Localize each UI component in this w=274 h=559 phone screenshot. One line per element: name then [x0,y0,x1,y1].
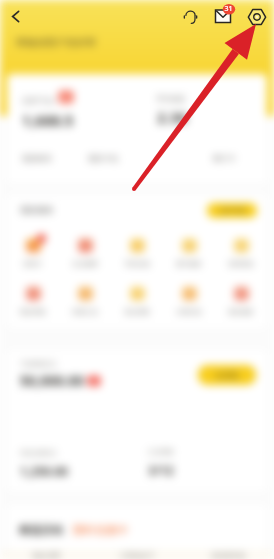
button[interactable]: 银行卡 [213,154,236,163]
staticText: 转账汇款 [72,308,98,316]
button[interactable]: Back [4,5,27,28]
staticText: 精选活动 [19,523,63,537]
staticText: 选优惠补贴 [211,551,246,559]
button[interactable]: 手机充值 [111,235,163,268]
staticText: 更多服务 [228,308,254,316]
button[interactable]: 分期还款中 [92,551,183,559]
staticText: 基金理财 [124,308,150,316]
button[interactable]: 转账汇款 [59,283,111,316]
staticText: 新 [63,93,69,101]
button[interactable]: 生活缴费 [59,235,111,268]
staticText: 我的消费 [32,551,60,559]
staticText: 信用卡 [23,260,43,268]
button[interactable]: 信用卡 [7,235,59,268]
staticText: 我的服务 [20,205,54,216]
staticText: 立即申请 [218,206,246,215]
staticText: 息 [91,377,97,385]
button[interactable]: 基金理财 [111,283,163,316]
staticText: 手机充值 [124,260,150,268]
staticText: 分期还款中 [120,551,155,559]
button[interactable]: 爱车服务 [163,235,215,268]
staticText: 31 [224,4,233,14]
staticText: 可借额度(元) [20,359,57,368]
staticText: 生活缴费 [72,260,98,268]
staticText: 3/12 [148,462,174,478]
staticText: 总资产(元) [22,96,55,106]
button[interactable]: 我的保险 [7,283,59,316]
staticText: 限时优惠中 [73,523,128,537]
button[interactable]: 去借钱 [198,365,256,385]
button[interactable]: 选优惠补贴 [183,551,274,559]
staticText: 我的保险 [20,308,46,316]
staticText: 尊敬的用户您好呀 [16,36,96,49]
staticText: 1,688.5 [22,110,74,130]
button[interactable]: 分期付款 [163,283,215,316]
button[interactable]: 我的卡包 [88,154,213,163]
staticText: 1,250.00 [20,463,68,479]
staticText: 银行卡 [213,154,236,163]
button[interactable]: Customer service [178,4,202,28]
staticText: 分期付款 [176,308,202,316]
button[interactable]: 信用贷款 [215,235,267,268]
staticText: 昨日收益 [157,94,185,103]
staticText: 已还期数 [148,448,174,456]
staticText: 爱车服务 [176,260,202,268]
staticText: 待还金额(元) [20,448,57,457]
button[interactable]: 立即申请 [207,203,257,218]
staticText: 我的卡包 [88,154,118,163]
staticText: 去借钱 [215,370,239,380]
button[interactable]: Settings [245,5,269,29]
button[interactable]: 我的账单 [22,154,88,163]
staticText: 2.36 [157,107,187,127]
button[interactable]: 更多服务 [215,283,267,316]
staticText: 我的账单 [22,154,52,163]
staticText: 50,000.00 [20,371,84,390]
button[interactable]: Messages [210,3,236,29]
button[interactable]: 我的消费 [0,551,92,559]
staticText: 信用贷款 [228,260,254,268]
